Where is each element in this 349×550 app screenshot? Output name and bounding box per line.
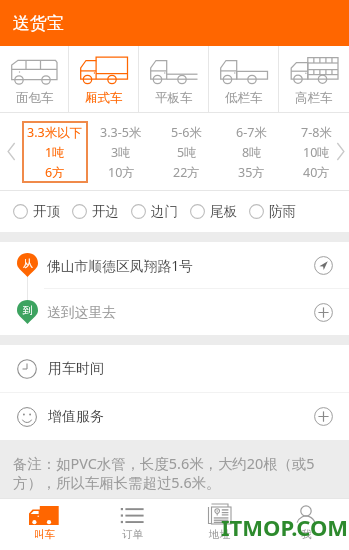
- button[interactable]: 低栏车: [209, 46, 279, 112]
- staticText: 5-6米: [171, 124, 202, 141]
- staticText: ITMOP.COM: [221, 512, 349, 542]
- staticText: 我: [301, 528, 312, 541]
- button[interactable]: 防雨: [249, 191, 308, 232]
- button[interactable]: 叫车: [0, 499, 88, 550]
- button[interactable]: 面包车: [0, 46, 69, 112]
- staticText: 佛山市顺德区凤翔路1号: [47, 256, 193, 275]
- other: Locate: [314, 256, 333, 275]
- button[interactable]: 订单: [88, 499, 175, 550]
- button[interactable]: 边门: [131, 191, 190, 232]
- button[interactable]: 从: [0, 242, 349, 288]
- button[interactable]: 3.3米以下: [22, 113, 88, 190]
- staticText: 用车时间: [48, 360, 104, 378]
- staticText: 6-7米: [236, 124, 267, 141]
- staticText: 8吨: [242, 144, 262, 161]
- staticText: 平板车: [155, 90, 193, 106]
- other: Previous: [7, 143, 16, 160]
- other: Add destination: [314, 303, 333, 322]
- other: Add service: [314, 407, 333, 426]
- button[interactable]: 平板车: [139, 46, 209, 112]
- staticText: 从: [23, 257, 33, 270]
- staticText: 开边: [92, 203, 120, 220]
- button[interactable]: 地址: [175, 499, 262, 550]
- staticText: 40方: [303, 164, 330, 181]
- button[interactable]: 高栏车: [279, 46, 349, 112]
- staticText: 3.3-5米: [100, 124, 142, 141]
- staticText: 送到这里去: [47, 304, 116, 321]
- button[interactable]: 用车时间: [0, 345, 349, 392]
- staticText: 22方: [173, 164, 200, 181]
- staticText: 防雨: [269, 203, 297, 220]
- button[interactable]: 5-6米: [154, 113, 219, 190]
- staticText: 35方: [238, 164, 265, 181]
- staticText: 高栏车: [295, 90, 333, 106]
- button[interactable]: 增值服务: [0, 393, 349, 440]
- staticText: 10吨: [303, 144, 330, 161]
- other: Next: [336, 143, 345, 160]
- staticText: 10方: [108, 164, 135, 181]
- button[interactable]: 3.3-5米: [88, 113, 154, 190]
- button[interactable]: 尾板: [190, 191, 249, 232]
- staticText: 订单: [122, 528, 143, 541]
- staticText: 1吨: [45, 144, 65, 161]
- staticText: 7-8米: [301, 124, 332, 141]
- button[interactable]: 开顶: [13, 191, 72, 232]
- button[interactable]: 开边: [72, 191, 131, 232]
- staticText: 开顶: [33, 203, 61, 220]
- staticText: 面包车: [16, 90, 54, 106]
- staticText: 6方: [45, 164, 65, 181]
- staticText: 备注：如PVC水管，长度5.6米，大约20根（或5方），所以车厢长需超过5.6米…: [13, 454, 335, 493]
- staticText: 3吨: [111, 144, 131, 161]
- button[interactable]: 6-7米: [219, 113, 284, 190]
- staticText: 到: [23, 304, 33, 317]
- button[interactable]: 到: [0, 289, 349, 335]
- staticText: 低栏车: [225, 90, 263, 106]
- staticText: 地址: [209, 528, 230, 541]
- staticText: 送货宝: [13, 13, 64, 34]
- staticText: 厢式车: [85, 90, 123, 106]
- button[interactable]: 我: [262, 499, 349, 550]
- button[interactable]: 7-8米: [284, 113, 349, 190]
- staticText: 叫车: [34, 528, 55, 541]
- staticText: 尾板: [210, 203, 238, 220]
- staticText: 边门: [151, 203, 179, 220]
- staticText: 5吨: [177, 144, 197, 161]
- staticText: 3.3米以下: [27, 124, 83, 141]
- button[interactable]: 厢式车: [69, 46, 139, 112]
- staticText: 增值服务: [48, 408, 104, 426]
